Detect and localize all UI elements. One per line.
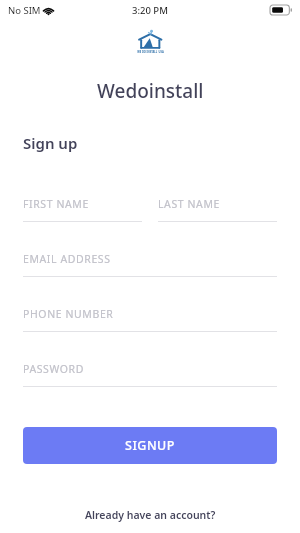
button[interactable]: LAST NAME [158, 197, 277, 222]
staticText: PASSWORD [23, 362, 84, 376]
staticText: LAST NAME [158, 197, 220, 211]
staticText: WE DO INSTALL USA [137, 50, 164, 54]
staticText: SIGNUP [125, 437, 175, 454]
button[interactable]: PASSWORD [23, 362, 277, 387]
staticText: 3:20 PM [132, 4, 168, 17]
button[interactable]: EMAIL ADDRESS [23, 252, 277, 277]
staticText: Wedoinstall [97, 78, 204, 104]
staticText: No SIM [8, 4, 41, 17]
staticText: Sign up [23, 133, 78, 153]
button[interactable]: Already have an account? [79, 505, 222, 525]
staticText: PHONE NUMBER [23, 307, 114, 321]
staticText: EMAIL ADDRESS [23, 252, 111, 266]
staticText: FIRST NAME [23, 197, 89, 211]
button[interactable]: PHONE NUMBER [23, 307, 277, 332]
button[interactable]: FIRST NAME [23, 197, 142, 222]
staticText: Already have an account? [85, 508, 216, 522]
button[interactable]: SIGNUP [23, 427, 277, 464]
